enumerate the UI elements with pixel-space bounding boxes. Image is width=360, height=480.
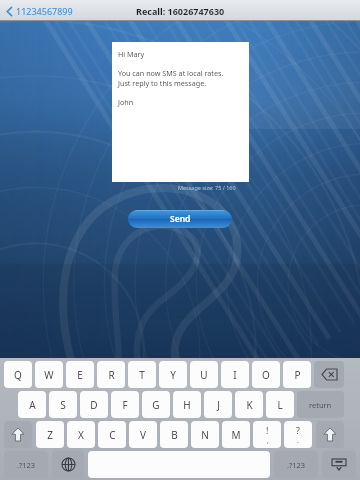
button[interactable]: V (129, 421, 157, 448)
button[interactable]: O (252, 361, 280, 388)
staticText: You can now SMS at local rates. (118, 68, 224, 78)
staticText: J (217, 398, 220, 412)
staticText: ? (296, 424, 300, 436)
button[interactable]: X (67, 421, 95, 448)
staticText: N (201, 428, 209, 442)
staticText: . (297, 436, 299, 445)
button[interactable]: A (18, 391, 46, 418)
button[interactable]: Send (128, 210, 232, 228)
staticText: M (231, 428, 241, 442)
staticText: return (309, 400, 332, 410)
button[interactable]: Backspace (314, 361, 344, 388)
staticText: .?123 (287, 460, 306, 470)
staticText: T (139, 368, 145, 382)
button[interactable]: R (97, 361, 125, 388)
staticText: W (44, 368, 54, 382)
staticText: P (294, 368, 301, 382)
button[interactable]: Z (36, 421, 64, 448)
staticText: C (109, 428, 116, 442)
button[interactable]: Hi Mary (112, 42, 249, 182)
button[interactable]: Change keyboard language (52, 451, 84, 478)
staticText: H (183, 398, 191, 412)
button[interactable]: ? (284, 421, 312, 448)
staticText: D (90, 398, 98, 412)
staticText: Send (170, 213, 191, 225)
button[interactable]: T (128, 361, 156, 388)
button[interactable]: Space (88, 451, 270, 478)
staticText: V (140, 428, 146, 442)
staticText: Just reply to this message. (118, 78, 207, 88)
button[interactable]: I (221, 361, 249, 388)
staticText: K (246, 398, 253, 412)
button[interactable]: K (235, 391, 263, 418)
button[interactable]: Q (4, 361, 32, 388)
staticText: E (77, 368, 83, 382)
button[interactable]: Y (159, 361, 187, 388)
button[interactable]: Hide keyboard (322, 451, 356, 478)
button[interactable]: B (160, 421, 188, 448)
button[interactable]: Shift (4, 421, 32, 448)
staticText: B (171, 428, 178, 442)
staticText: Recall: 16026747630 (136, 5, 225, 17)
button[interactable]: .?123 (4, 451, 48, 478)
button[interactable]: P (283, 361, 311, 388)
button[interactable]: M (222, 421, 250, 448)
staticText: X (78, 428, 84, 442)
staticText: .?123 (17, 460, 36, 470)
staticText: Hi Mary (118, 49, 145, 59)
button[interactable]: U (190, 361, 218, 388)
staticText: S (60, 398, 66, 412)
button[interactable]: .?123 (274, 451, 318, 478)
button[interactable]: J (204, 391, 232, 418)
staticText: R (108, 368, 115, 382)
staticText: Q (14, 368, 22, 382)
button[interactable]: D (80, 391, 108, 418)
button[interactable]: E (66, 361, 94, 388)
staticText: O (262, 368, 270, 382)
button[interactable]: L (266, 391, 294, 418)
button[interactable]: S (49, 391, 77, 418)
button[interactable]: F (111, 391, 139, 418)
button[interactable]: return (297, 391, 344, 418)
button[interactable]: W (35, 361, 63, 388)
button[interactable]: G (142, 391, 170, 418)
button[interactable]: Shift (316, 421, 344, 448)
button[interactable]: C (98, 421, 126, 448)
button[interactable]: 11234567899 (4, 3, 75, 19)
staticText: John (118, 97, 134, 107)
staticText: U (200, 368, 208, 382)
button[interactable]: N (191, 421, 219, 448)
staticText: ! (266, 424, 269, 436)
staticText: Message size: 75 / 160 (178, 184, 236, 191)
staticText: 11234567899 (16, 5, 73, 17)
staticText: A (29, 398, 36, 412)
staticText: Z (47, 428, 53, 442)
staticText: F (122, 398, 128, 412)
staticText: Y (170, 368, 176, 382)
staticText: I (233, 368, 237, 382)
staticText: , (267, 436, 269, 445)
button[interactable]: ! (253, 421, 281, 448)
button[interactable]: H (173, 391, 201, 418)
staticText: L (277, 398, 283, 412)
staticText: G (152, 398, 160, 412)
